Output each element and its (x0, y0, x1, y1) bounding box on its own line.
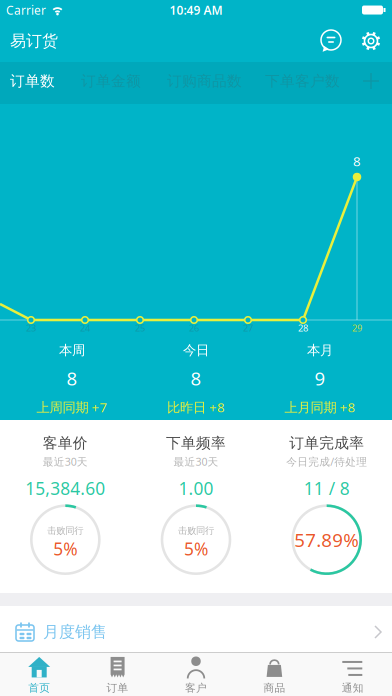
button[interactable] (318, 28, 344, 54)
button[interactable] (358, 28, 384, 54)
staticText: 比昨日 +8 (167, 398, 225, 416)
staticText: 8 (66, 366, 77, 391)
staticText: Carrier (6, 2, 46, 18)
button[interactable]: 首页 (0, 653, 78, 694)
staticText: 23 (26, 322, 36, 334)
staticText: 上周同期 +7 (36, 398, 107, 416)
staticText: 最近30天 (173, 454, 218, 469)
button[interactable]: 客户 (157, 653, 235, 694)
staticText: 客户 (185, 681, 207, 694)
staticText: 易订货 (10, 31, 58, 51)
staticText: 15,384.60 (25, 477, 105, 500)
staticText: 首页 (28, 681, 50, 694)
button[interactable]: 下单客户数 (265, 72, 340, 90)
staticText: 下单客户数 (265, 72, 340, 90)
staticText: 24 (80, 322, 90, 334)
button[interactable]: 订单 (78, 653, 157, 694)
button[interactable]: 商品 (235, 653, 314, 694)
button[interactable]: 订单金额 (81, 72, 141, 90)
staticText: 57.89% (294, 527, 359, 552)
staticText: 1.00 (178, 477, 213, 500)
staticText: 通知 (342, 681, 364, 694)
button[interactable]: 通知 (314, 653, 392, 694)
staticText: 今日 (183, 342, 209, 358)
button[interactable]: 月度销售 (0, 606, 392, 652)
button[interactable]: 订单数 (10, 72, 55, 90)
staticText: 本周 (59, 342, 85, 358)
staticText: 客单价 (43, 434, 88, 452)
staticText: 今日完成/待处理 (286, 454, 367, 469)
button[interactable] (363, 73, 379, 89)
staticText: 11 / 8 (304, 477, 350, 500)
staticText: 击败同行 (178, 525, 214, 536)
staticText: 8 (353, 152, 361, 170)
staticText: 27 (243, 322, 253, 334)
staticText: 击败同行 (47, 525, 83, 536)
staticText: 订单数 (10, 72, 55, 90)
staticText: 订单金额 (81, 72, 141, 90)
staticText: 最近30天 (43, 454, 88, 469)
staticText: 10:49 AM (169, 2, 222, 18)
staticText: 下单频率 (166, 434, 226, 452)
staticText: 29 (352, 322, 362, 334)
button[interactable]: 订购商品数 (167, 72, 242, 90)
staticText: 5% (184, 537, 208, 560)
staticText: 9 (314, 366, 325, 391)
staticText: 月度销售 (43, 622, 107, 642)
staticText: 商品 (263, 681, 285, 694)
staticText: 26 (189, 322, 199, 334)
staticText: 订单完成率 (289, 434, 364, 452)
staticText: 订购商品数 (167, 72, 242, 90)
staticText: 本月 (307, 342, 333, 358)
staticText: 28 (298, 322, 308, 334)
staticText: 5% (53, 537, 77, 560)
staticText: 订单 (107, 681, 129, 694)
staticText: 8 (190, 366, 201, 391)
staticText: 上月同期 +8 (284, 398, 355, 416)
staticText: 25 (135, 322, 145, 334)
